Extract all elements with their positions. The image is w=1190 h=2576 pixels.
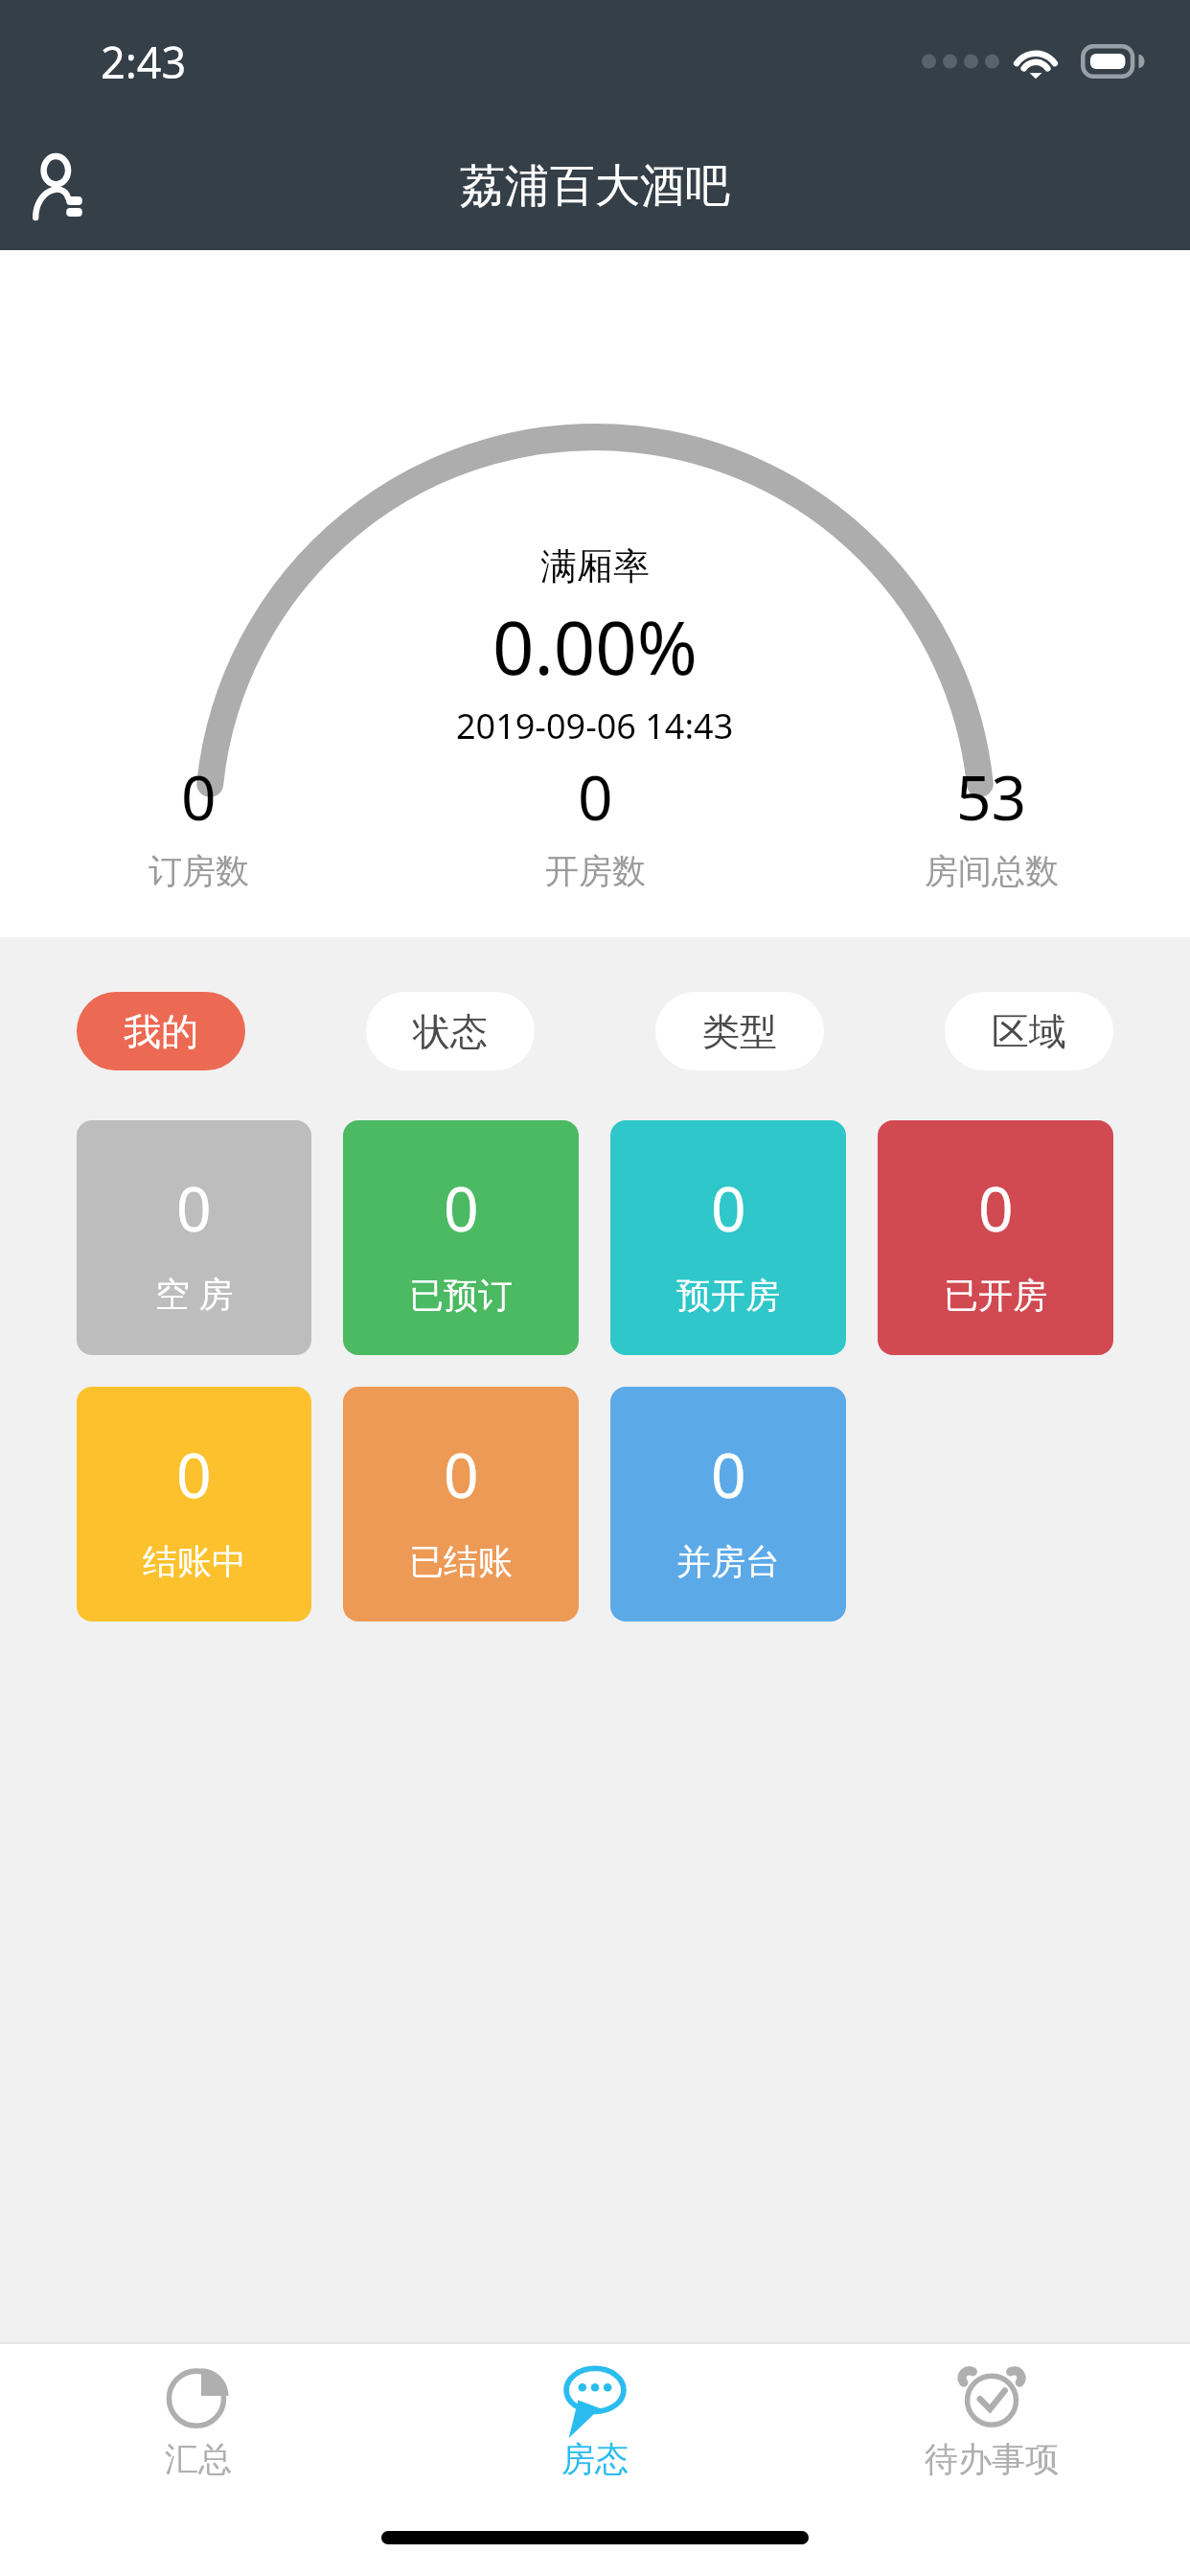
staticText: 53 [956,755,1027,839]
staticText: 0.00% [492,597,698,697]
staticText: 已预订 [409,1274,513,1317]
button[interactable]: 房态 [397,2344,793,2499]
staticText: 房态 [561,2438,629,2480]
staticText: 已开房 [944,1274,1047,1317]
button[interactable]: 53 [793,755,1190,892]
button[interactable]: 状态 [366,992,535,1070]
staticText: 0 [578,755,613,839]
button[interactable]: 0 [77,1387,311,1621]
button[interactable]: 0 [343,1387,579,1621]
staticText: 2:43 [101,33,187,91]
staticText: 状态 [413,1008,488,1055]
staticText: 预开房 [676,1274,780,1317]
button[interactable]: 0 [343,1120,579,1355]
button[interactable]: 0 [610,1120,846,1355]
staticText: 0 [444,1166,479,1250]
staticText: 空 房 [155,1270,234,1317]
staticText: 满厢率 [540,543,650,589]
staticText: 荔浦百大酒吧 [460,158,730,215]
staticText: 汇总 [165,2438,232,2480]
button[interactable]: 类型 [655,992,824,1070]
staticText: 并房台 [676,1540,780,1583]
staticText: 我的 [124,1008,198,1055]
staticText: 订房数 [149,850,249,892]
button[interactable]: 0 [610,1387,846,1621]
button[interactable]: 0 [878,1120,1113,1355]
staticText: 区域 [992,1008,1066,1055]
staticText: 0 [978,1166,1014,1250]
button[interactable]: 区域 [945,992,1113,1070]
staticText: 结账中 [143,1540,246,1583]
staticText: 0 [444,1433,479,1516]
button[interactable]: 0 [0,755,397,892]
staticText: 0 [711,1166,746,1250]
button[interactable]: 待办事项 [793,2344,1190,2499]
staticText: 0 [711,1433,746,1516]
button[interactable]: 0 [397,755,793,892]
staticText: 0 [181,755,217,839]
staticText: 已结账 [409,1540,513,1583]
staticText: 2019-09-06 14:43 [456,702,734,749]
staticText: 类型 [702,1008,777,1055]
button[interactable]: Account [15,139,111,235]
staticText: 房间总数 [925,850,1059,892]
button[interactable]: 汇总 [0,2344,397,2499]
staticText: 0 [176,1166,212,1250]
button[interactable]: 我的 [77,992,245,1070]
button[interactable]: 0 [77,1120,311,1355]
staticText: 开房数 [545,850,646,892]
staticText: 待办事项 [925,2438,1059,2480]
staticText: 0 [176,1433,212,1516]
